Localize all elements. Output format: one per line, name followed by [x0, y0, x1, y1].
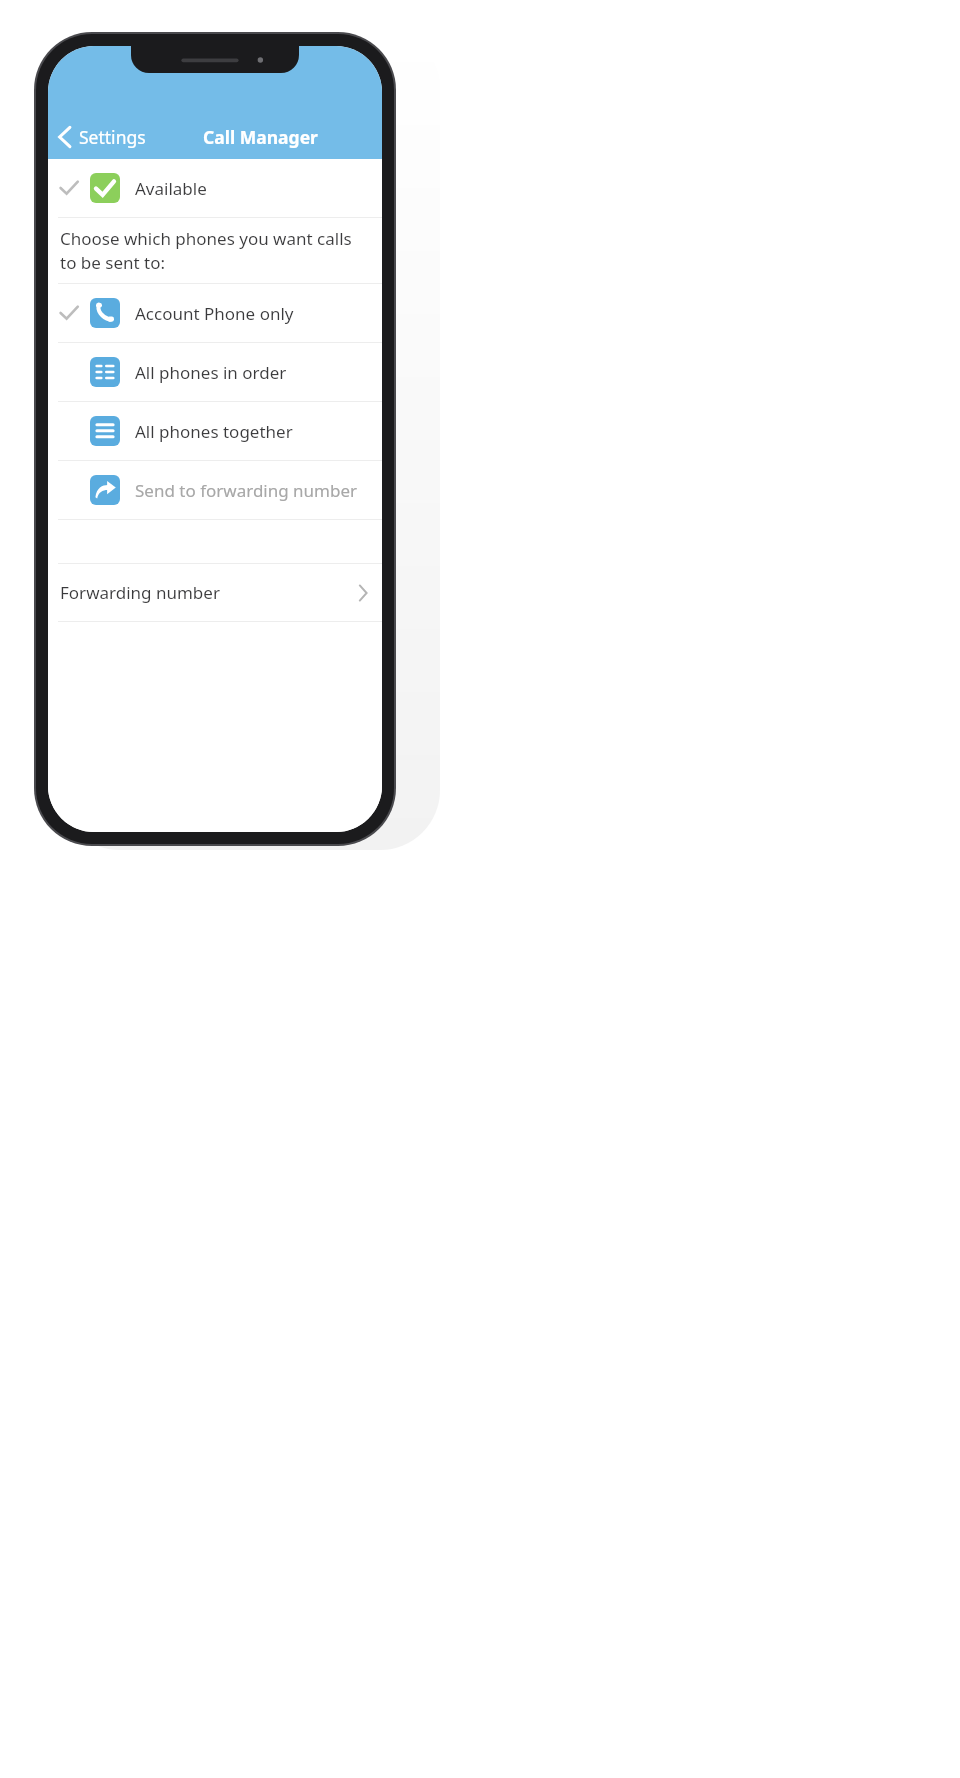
staticText: Available	[135, 177, 207, 200]
staticText: All phones together	[135, 420, 293, 443]
staticText: Choose which phones you want calls to be…	[60, 227, 366, 274]
button[interactable]: All phones in order	[48, 343, 382, 401]
staticText: Call Manager	[203, 125, 318, 149]
staticText: Send to forwarding number	[135, 479, 358, 502]
staticText: All phones in order	[135, 361, 287, 384]
staticText: Settings	[79, 125, 146, 149]
button[interactable]: Account phone	[48, 284, 382, 342]
staticText: Account Phone only	[135, 302, 294, 325]
button[interactable]: Available	[48, 159, 382, 217]
button[interactable]: Forwarding number	[48, 564, 382, 621]
staticText: Forwarding number	[60, 581, 220, 604]
button[interactable]: Send to forwarding number	[48, 461, 382, 519]
button[interactable]: Settings	[48, 121, 156, 153]
button[interactable]: All phones together	[48, 402, 382, 460]
